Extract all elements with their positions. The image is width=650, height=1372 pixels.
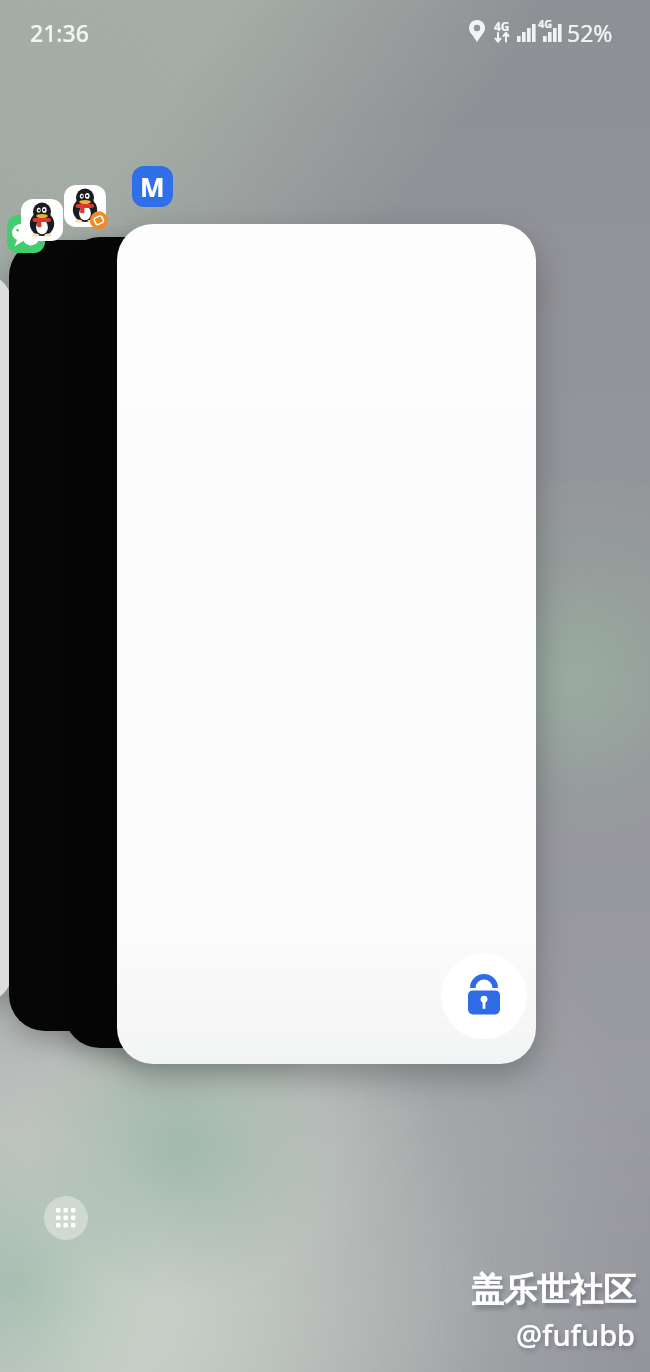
staticText: 52%: [567, 17, 613, 48]
staticText: M: [140, 169, 165, 204]
staticText: @fufubb: [516, 1315, 636, 1354]
button[interactable]: M: [132, 166, 173, 207]
button[interactable]: [64, 185, 106, 227]
staticText: 盖乐世社区: [471, 1269, 636, 1311]
staticText: 4G: [494, 18, 510, 34]
button[interactable]: [44, 1196, 88, 1240]
staticText: 4G: [538, 16, 553, 31]
button[interactable]: [117, 224, 536, 1064]
button[interactable]: [21, 199, 63, 241]
button[interactable]: [7, 215, 45, 253]
button[interactable]: [441, 953, 527, 1039]
staticText: 21:36: [30, 17, 89, 48]
